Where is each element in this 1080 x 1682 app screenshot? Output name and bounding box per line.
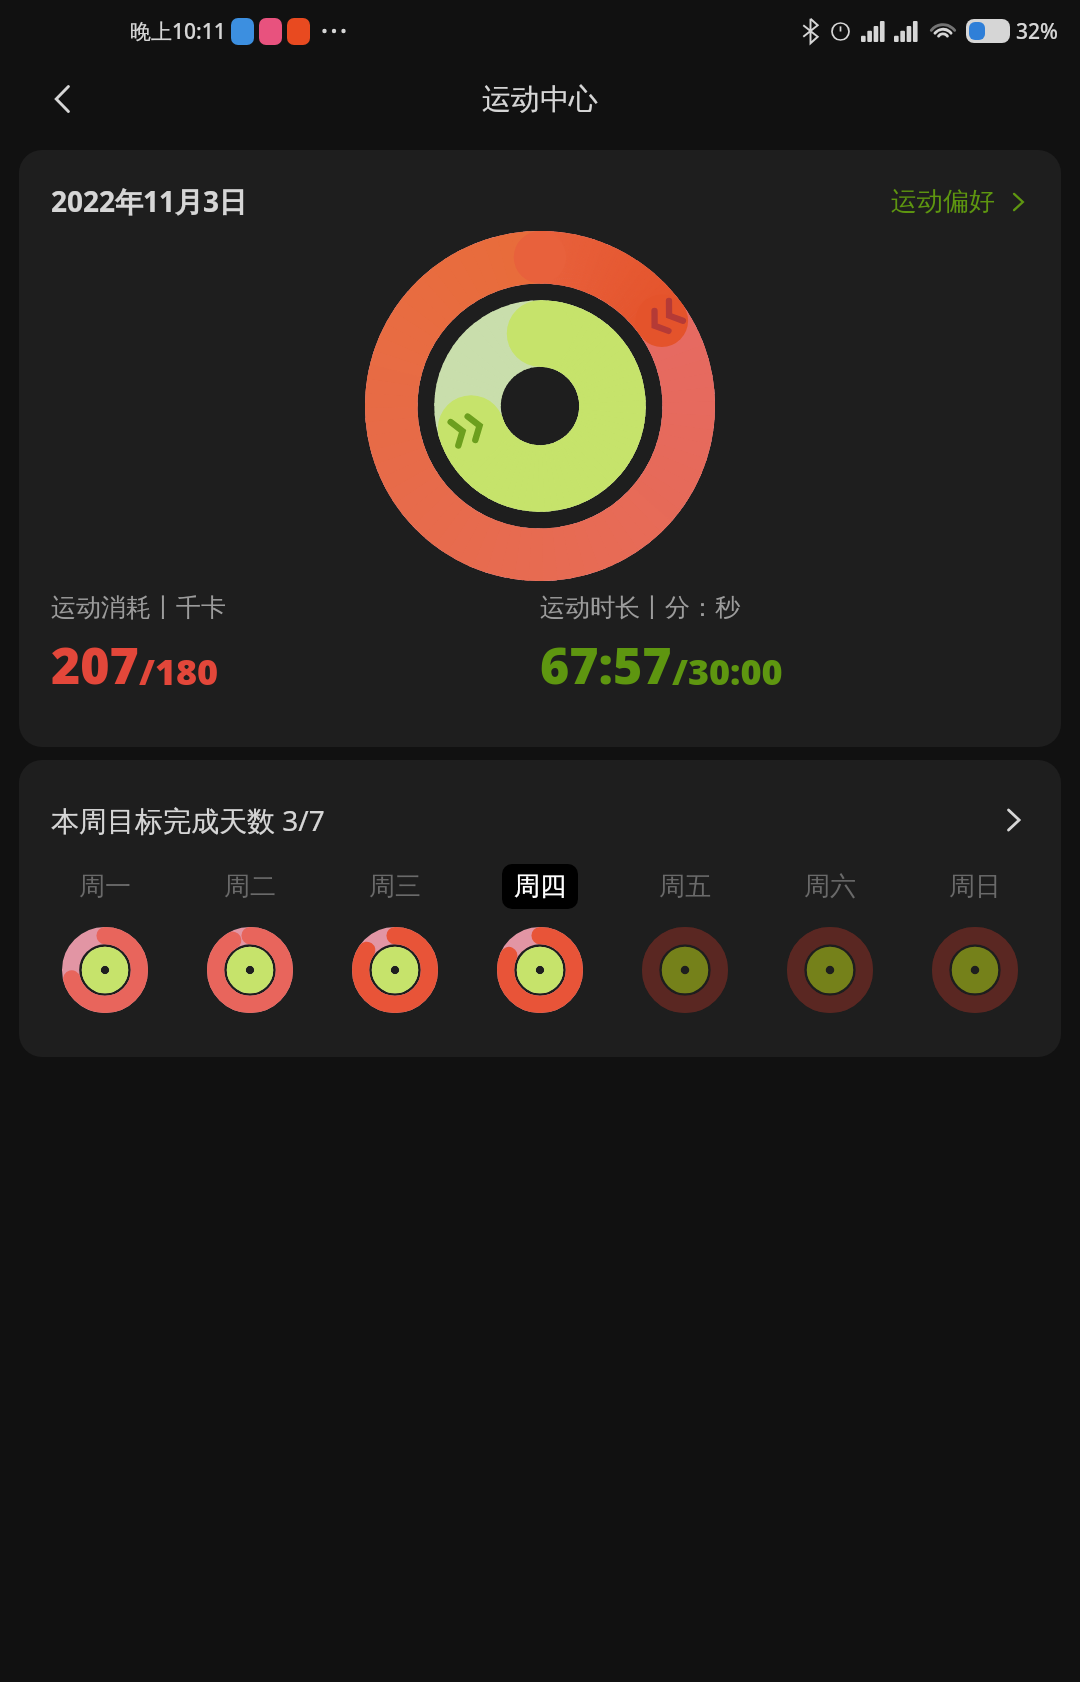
staticText: 运动消耗丨千卡 <box>51 592 226 623</box>
staticText: 周日 <box>949 870 1001 903</box>
staticText: /30:00 <box>672 647 783 696</box>
staticText: 2022年11月3日 <box>51 182 248 220</box>
staticText: 周一 <box>79 870 131 903</box>
button[interactable]: 运动偏好 <box>891 185 1029 218</box>
staticText: 运动时长丨分：秒 <box>540 592 740 623</box>
staticText: 本周目标完成天数 3/7 <box>51 801 325 839</box>
staticText: 207 <box>51 631 139 699</box>
button[interactable]: 2022年11月3日 <box>19 150 1061 747</box>
staticText: 周二 <box>224 870 276 903</box>
button[interactable]: 周四 <box>467 864 612 1013</box>
staticText: /180 <box>139 647 219 696</box>
staticText: 运动偏好 <box>891 185 995 218</box>
button[interactable]: 周六 <box>757 864 902 1013</box>
button[interactable]: View weekly details <box>991 798 1035 842</box>
staticText: 周三 <box>369 870 421 903</box>
staticText: 周四 <box>514 870 566 903</box>
button[interactable]: 本周目标完成天数 3/7 <box>19 760 1061 1057</box>
staticText: 32% <box>1016 17 1058 46</box>
staticText: 周五 <box>659 870 711 903</box>
button[interactable]: 周日 <box>902 864 1047 1013</box>
staticText: 运动中心 <box>482 81 598 118</box>
button[interactable]: Back <box>34 70 92 128</box>
button[interactable]: 周五 <box>612 864 757 1013</box>
staticText: 67:57 <box>540 631 672 699</box>
button[interactable]: 周三 <box>322 864 467 1013</box>
staticText: 晚上10:11 <box>130 17 226 46</box>
button[interactable]: 周一 <box>33 864 177 1013</box>
staticText: 周六 <box>804 870 856 903</box>
button[interactable]: 周二 <box>177 864 322 1013</box>
